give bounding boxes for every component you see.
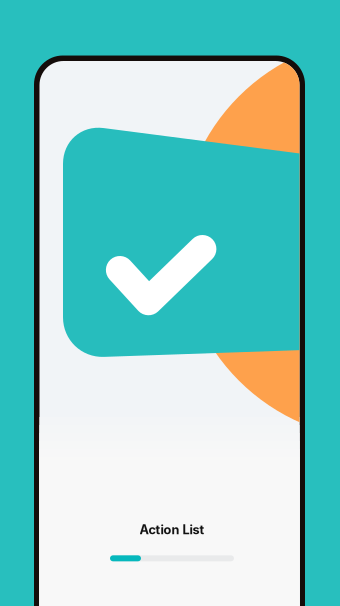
staticText: Action List — [139, 522, 204, 537]
